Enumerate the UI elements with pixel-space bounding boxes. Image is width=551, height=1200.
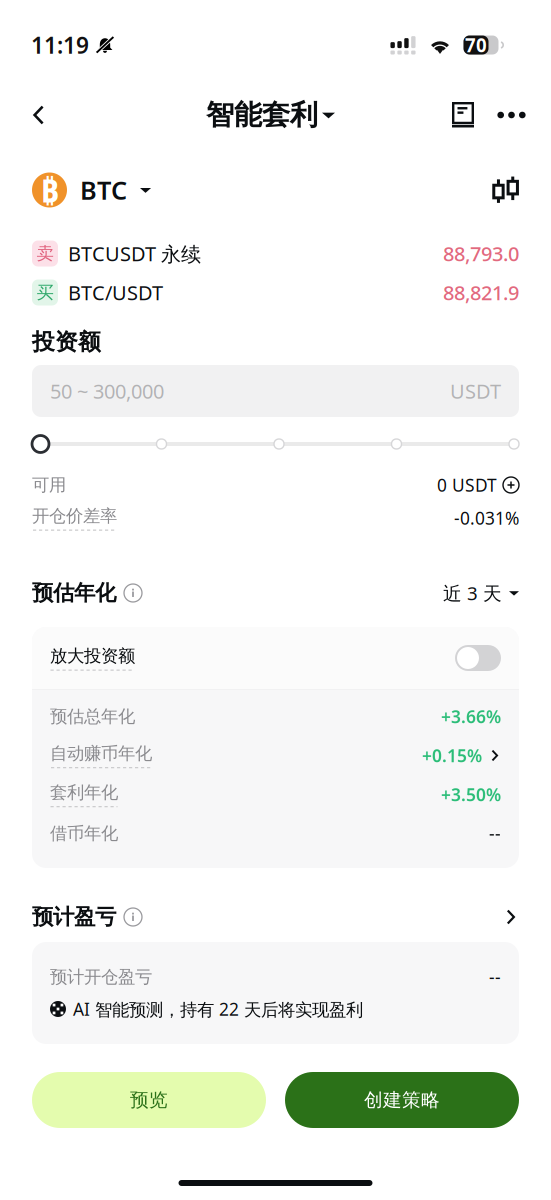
button[interactable]: 自动赚币年化 — [50, 736, 501, 775]
staticText: -- — [489, 965, 501, 988]
staticText: USDT — [450, 378, 501, 404]
staticText: -0.031% — [454, 506, 519, 529]
staticText: 88,821.9 — [443, 279, 519, 306]
staticText: 预览 — [130, 1088, 168, 1111]
staticText: 11:19 — [31, 30, 89, 60]
staticText: 投资额 — [32, 328, 101, 356]
staticText: ₿ — [40, 169, 58, 211]
staticText: 预估年化 — [32, 580, 116, 606]
staticText: 买 — [36, 282, 53, 303]
staticText: 卖 — [36, 243, 53, 264]
button[interactable]: 创建策略 — [285, 1072, 519, 1128]
button[interactable]: Order records — [452, 95, 474, 135]
staticText: 0 USDT — [437, 473, 497, 496]
staticText: 套利年化 — [50, 782, 118, 803]
staticText: 88,793.0 — [443, 240, 519, 267]
button[interactable]: 智能套利 — [206, 95, 335, 135]
staticText: 借币年化 — [50, 823, 118, 844]
staticText: +3.66% — [441, 705, 501, 728]
button[interactable]: ₿ — [32, 171, 151, 209]
staticText: 预计开仓盈亏 — [50, 966, 152, 988]
button[interactable]: Amplify investment amount — [455, 645, 501, 671]
staticText: 放大投资额 — [50, 645, 135, 667]
staticText: BTC — [80, 173, 127, 207]
button[interactable]: Add funds — [503, 477, 519, 493]
staticText: 50 ~ 300,000 — [50, 378, 164, 404]
staticText: +0.15% — [422, 744, 482, 767]
staticText: +3.50% — [441, 783, 501, 806]
button[interactable]: 近 3 天 — [443, 581, 519, 605]
staticText: BTC/USDT — [68, 279, 163, 306]
staticText: 可用 — [32, 474, 66, 496]
button[interactable]: More options — [498, 95, 525, 135]
button[interactable]: Back — [29, 95, 73, 135]
button[interactable]: Chart — [493, 171, 519, 209]
button[interactable]: Profit details — [502, 908, 519, 925]
staticText: 近 3 天 — [443, 581, 502, 605]
staticText: BTCUSDT 永续 — [68, 240, 201, 267]
staticText: 开仓价差率 — [32, 505, 117, 527]
staticText: 70 — [465, 33, 487, 57]
staticText: -- — [489, 822, 501, 845]
staticText: 创建策略 — [364, 1088, 440, 1111]
staticText: 预计盈亏 — [32, 904, 116, 930]
button[interactable]: 预览 — [32, 1072, 266, 1128]
staticText: AI 智能预测，持有 22 天后将实现盈利 — [73, 997, 363, 1020]
staticText: 智能套利 — [206, 98, 318, 132]
staticText: 自动赚币年化 — [50, 743, 152, 764]
staticText: 预估总年化 — [50, 706, 135, 727]
